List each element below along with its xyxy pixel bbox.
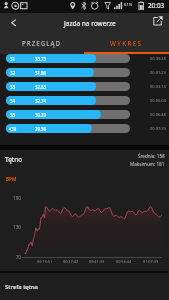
staticText: 32 [8, 70, 17, 76]
staticText: PRZEGLĄD [22, 39, 62, 47]
staticText: 00:41:33 [89, 259, 105, 264]
staticText: 31 [8, 56, 17, 62]
button[interactable]: 31 [0, 54, 169, 63]
button[interactable]: <36 [0, 124, 169, 133]
button[interactable]: 34 [0, 96, 169, 105]
staticText: 01:07:39 [143, 259, 159, 264]
staticText: Jazda na rowerze [64, 19, 116, 28]
staticText: 35 [8, 112, 17, 118]
staticText: 00:13:51 [37, 259, 53, 264]
staticText: 00:27:42 [63, 259, 79, 264]
staticText: 34 [8, 98, 17, 104]
staticText: Średnia: 158 [138, 153, 165, 159]
button[interactable]: PRZEGLĄD [0, 33, 84, 52]
staticText: 33 [8, 84, 17, 90]
staticText: 61% [124, 2, 133, 8]
staticText: 20:03 [148, 1, 165, 10]
staticText: WYKRES [110, 39, 143, 47]
staticText: 32.74 [29, 98, 52, 104]
button[interactable]: 35 [0, 110, 169, 119]
staticText: 00:54:44 [116, 259, 132, 264]
staticText: 190 [0, 195, 21, 201]
staticText: 00:07:39 [150, 126, 166, 131]
staticText: 31.86 [29, 70, 52, 76]
staticText: 32.63 [29, 84, 52, 90]
staticText: 30.29 [29, 112, 52, 118]
staticText: 00:39:28 [150, 56, 166, 61]
button[interactable]: WYKRES [84, 33, 169, 52]
staticText: 70 [0, 254, 21, 260]
button[interactable]: 32 [0, 68, 169, 77]
staticText: 00:06:48 [150, 112, 166, 117]
staticText: 00:05:04 [150, 98, 166, 103]
staticText: 00:01:23 [150, 70, 166, 75]
staticText: 29.36 [29, 126, 52, 132]
staticText: Strefa tętna [5, 283, 38, 291]
staticText: <36 [8, 126, 17, 132]
staticText: 00:03:14 [150, 84, 166, 89]
button[interactable]: 33 [0, 82, 169, 91]
staticText: 33.75 [29, 56, 52, 62]
staticText: BPM [6, 176, 17, 182]
staticText: Maksimum: 181 [130, 161, 165, 167]
staticText: Tętno [5, 155, 23, 164]
staticText: 130 [0, 224, 21, 230]
button[interactable]: Back [0, 13, 27, 33]
button[interactable]: Open in new [145, 13, 169, 33]
